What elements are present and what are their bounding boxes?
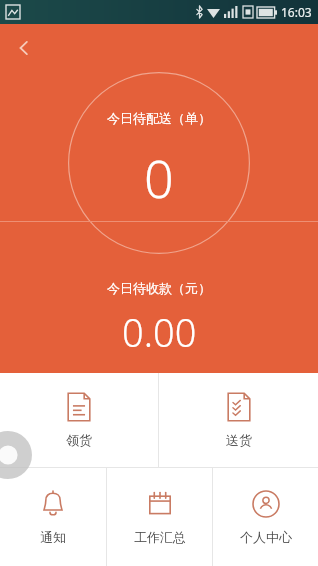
button[interactable]: 送货	[159, 373, 318, 467]
staticText: 16:03	[281, 4, 312, 20]
button[interactable]: Back	[4, 28, 44, 68]
staticText: 送货	[226, 432, 252, 448]
staticText: 领货	[66, 432, 92, 448]
staticText: 工作汇总	[134, 529, 186, 545]
button[interactable]: Assistive touch	[0, 431, 32, 479]
staticText: 0.00	[122, 306, 197, 358]
staticText: 0	[144, 142, 174, 213]
staticText: 今日待配送（单）	[107, 110, 211, 126]
button[interactable]: 个人中心	[213, 468, 318, 566]
staticText: 个人中心	[240, 529, 292, 545]
staticText: 通知	[40, 529, 66, 545]
button[interactable]: 通知	[0, 468, 106, 566]
button[interactable]: 领货	[0, 373, 158, 467]
staticText: 今日待收款（元）	[107, 280, 211, 296]
button[interactable]: 工作汇总	[107, 468, 212, 566]
